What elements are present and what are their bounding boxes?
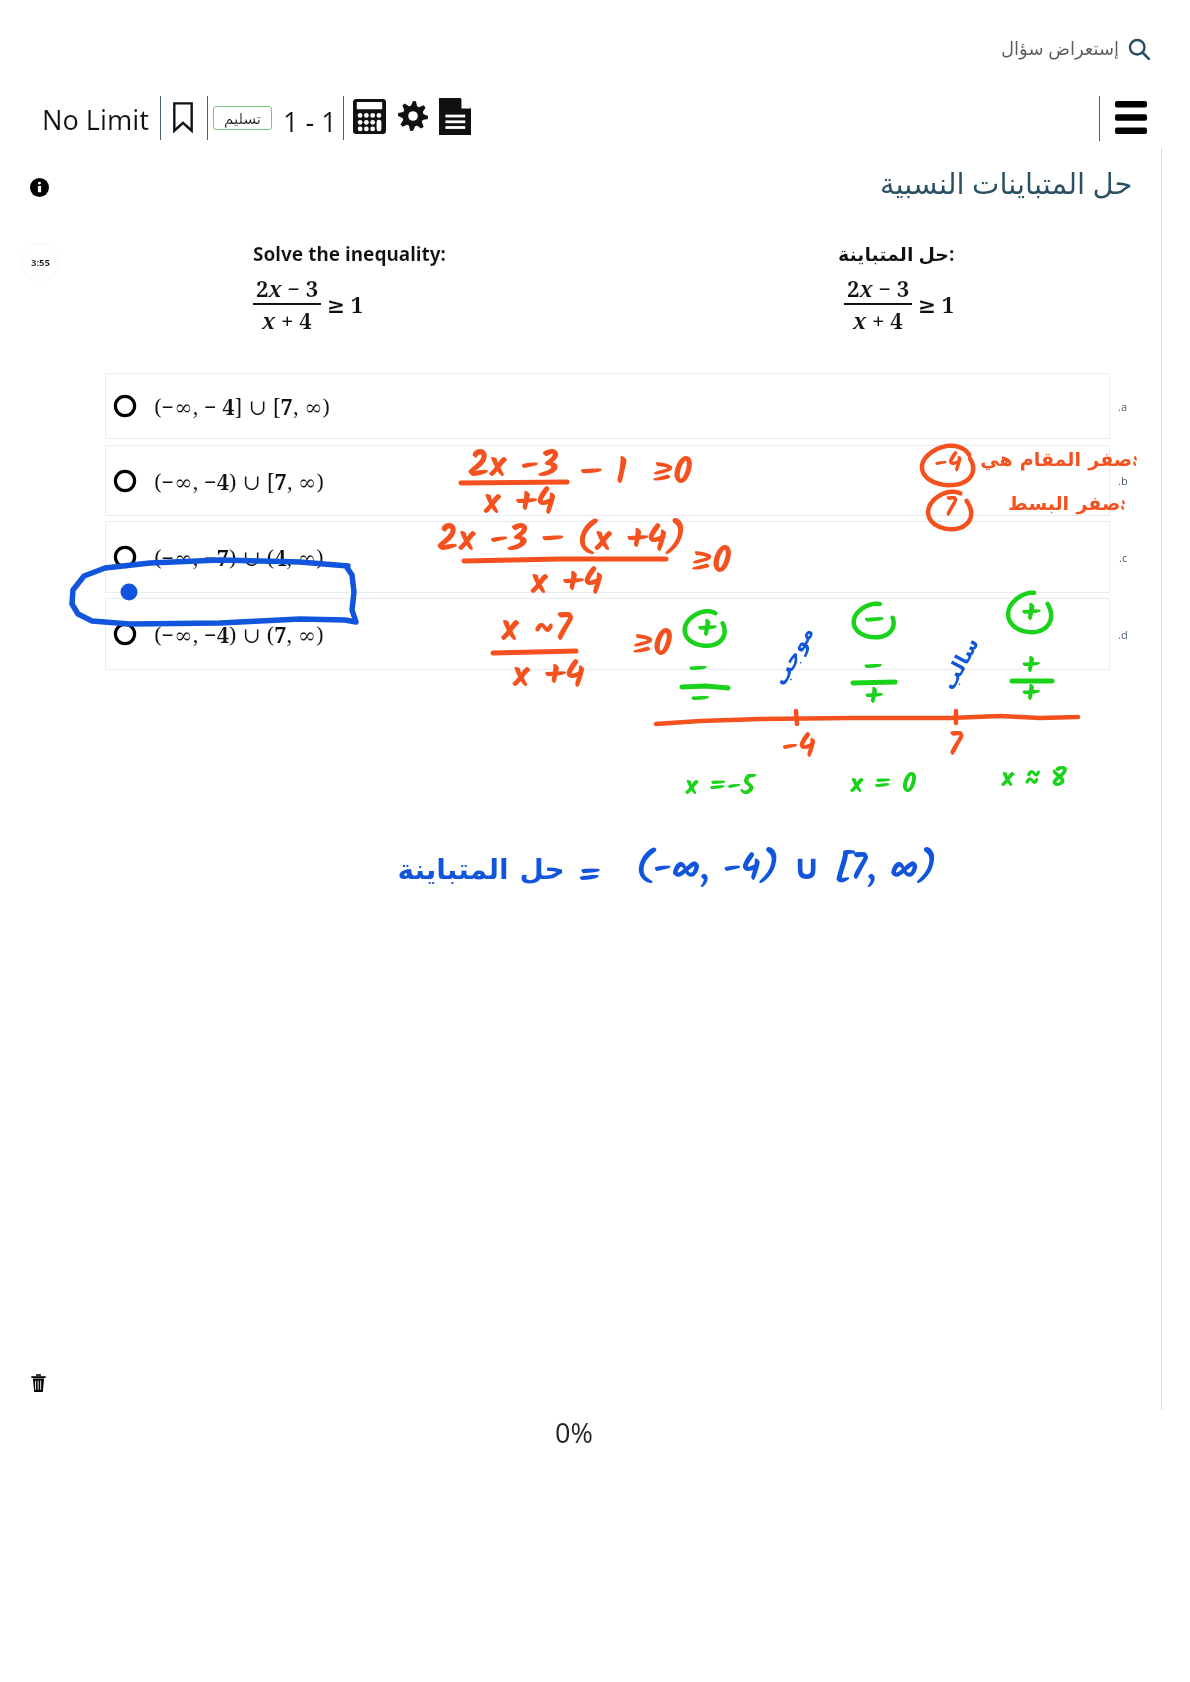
staticText: سالب — [936, 633, 983, 693]
staticText: − — [864, 596, 884, 647]
button[interactable]: Settings — [397, 99, 429, 133]
staticText: ≥0 — [651, 445, 692, 502]
staticText: x ~7 — [501, 601, 572, 660]
staticText: = — [577, 848, 602, 905]
staticText: No Limit — [42, 101, 149, 138]
staticText: 2x -3 — [468, 438, 559, 495]
staticText: تسليم — [224, 110, 262, 127]
staticText: -4 — [781, 722, 816, 773]
staticText: − — [691, 676, 709, 724]
button[interactable]: No Limit — [42, 101, 149, 138]
staticText: + — [1021, 642, 1039, 690]
button[interactable]: (−∞, − 4] ∪ [7, ∞) — [105, 373, 1110, 439]
staticText: ≥ 1 — [912, 289, 955, 319]
staticText: حل المتباينة: — [838, 241, 955, 267]
staticText: ≥ 1 — [321, 289, 364, 319]
staticText: حل المتباينة — [397, 849, 565, 894]
staticText: x =-5 — [685, 765, 755, 808]
button[interactable]: Delete — [30, 1373, 47, 1393]
staticText: صفر البسط: — [1008, 490, 1125, 520]
button[interactable]: تسليم — [213, 106, 272, 130]
staticText: ≥0 — [631, 617, 672, 674]
staticText: ≥0 — [690, 534, 731, 591]
staticText: x +4 — [483, 475, 556, 532]
staticText: (-∞, -4) ∪ [7, ∞) — [636, 842, 937, 898]
staticText: + — [1021, 670, 1039, 718]
staticText: (−∞, −4) ∪ [7, ∞) — [154, 466, 325, 496]
staticText: x + 4 — [262, 305, 312, 335]
staticText: 7 — [947, 721, 963, 772]
staticText: − — [689, 646, 707, 694]
staticText: x ≈ 8 — [1001, 757, 1067, 800]
button[interactable]: Menu — [1115, 101, 1147, 134]
button[interactable]: Document — [439, 98, 471, 135]
button[interactable]: Bookmark — [169, 99, 197, 135]
staticText: .c — [1119, 550, 1128, 565]
staticText: x +4 — [530, 555, 603, 612]
staticText: (−∞, − 4] ∪ [7, ∞) — [154, 391, 331, 421]
staticText: (−∞, −7) ∪ (4, ∞) — [154, 542, 324, 572]
button[interactable]: إستعراض سؤال — [1001, 36, 1150, 61]
staticText: − — [864, 644, 882, 692]
staticText: (−∞, −4) ∪ (7, ∞) — [154, 619, 324, 649]
staticText: صفر المقام هي: — [980, 446, 1137, 476]
staticText: x + 4 — [853, 305, 903, 335]
button[interactable]: Calculator — [353, 99, 386, 134]
staticText: + — [864, 673, 882, 721]
staticText: حل المتباينات النسبية — [880, 163, 1133, 202]
staticText: -4 — [934, 443, 962, 484]
staticText: .a — [1118, 399, 1128, 414]
button[interactable]: 3:55 — [21, 243, 59, 281]
button[interactable]: (−∞, −4) ∪ (7, ∞) — [105, 598, 1110, 670]
staticText: موجب — [767, 622, 819, 690]
button[interactable]: (−∞, −4) ∪ [7, ∞) — [105, 445, 1110, 516]
button[interactable]: (−∞, −7) ∪ (4, ∞) — [105, 521, 1110, 593]
staticText: 2x − 3 — [256, 273, 319, 303]
staticText: + — [696, 604, 716, 655]
staticText: x +4 — [512, 648, 585, 705]
staticText: + — [1020, 588, 1040, 639]
staticText: .d — [1118, 627, 1128, 642]
button[interactable]: Info — [30, 178, 49, 197]
staticText: إستعراض سؤال — [1001, 36, 1120, 61]
staticText: − 1 — [580, 445, 627, 502]
staticText: .b — [1118, 473, 1128, 488]
staticText: 1 - 1 — [283, 103, 337, 140]
staticText: 2x -3 − (x +4) — [437, 512, 686, 569]
staticText: 0% — [555, 1414, 593, 1451]
staticText: x = 0 — [850, 763, 916, 806]
staticText: Solve the inequality: — [253, 241, 446, 267]
staticText: 7 — [944, 488, 957, 529]
staticText: 2x − 3 — [847, 273, 910, 303]
staticText: 3:55 — [31, 256, 50, 269]
button[interactable]: 1 - 1 — [283, 103, 337, 140]
